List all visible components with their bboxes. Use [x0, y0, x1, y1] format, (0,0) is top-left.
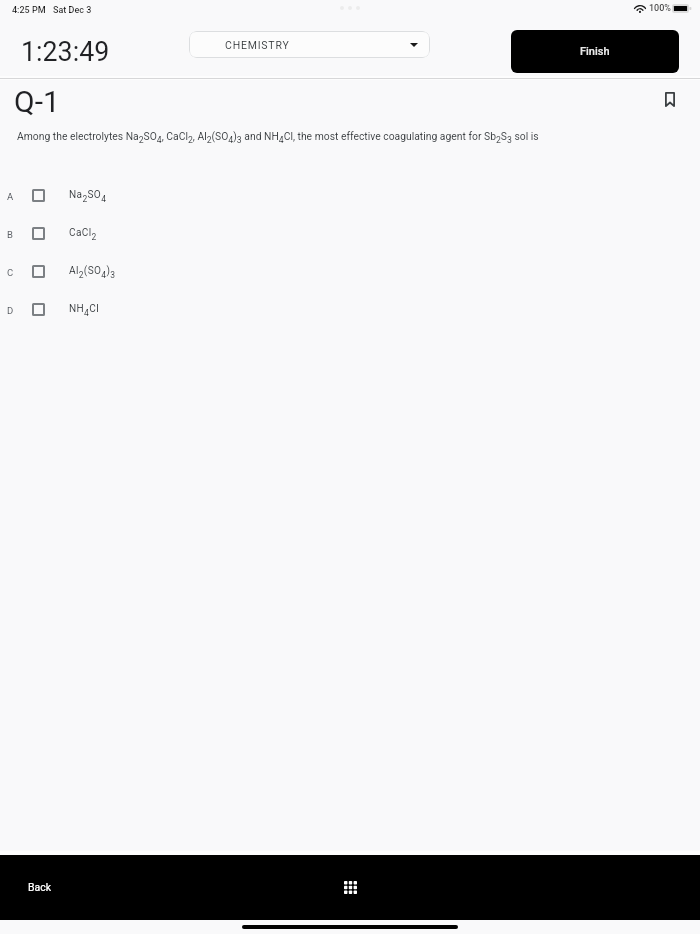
button[interactable]: All questions [334, 871, 366, 903]
staticText: Q-1 [14, 84, 60, 119]
staticText: 4:25 PM [12, 5, 46, 16]
staticText: Na2SO4 [69, 189, 107, 204]
staticText: Sat Dec 3 [53, 5, 92, 16]
staticText: B [7, 229, 13, 240]
button[interactable]: A [0, 177, 700, 215]
button[interactable]: Finish [511, 30, 679, 73]
button[interactable]: B [0, 215, 700, 253]
button[interactable]: CHEMISTRY [189, 31, 430, 58]
staticText: C [7, 267, 14, 278]
staticText: Al2(SO4)3 [69, 265, 116, 280]
staticText: CaCl2 [69, 227, 97, 242]
staticText: CHEMISTRY [225, 39, 290, 51]
staticText: NH4Cl [69, 303, 99, 318]
staticText: Among the electrolytes Na2SO4, CaCl2, Al… [17, 130, 539, 145]
staticText: Back [28, 881, 52, 893]
button[interactable]: Back [28, 881, 52, 893]
button[interactable]: Bookmark [655, 88, 685, 118]
staticText: 1:23:49 [21, 36, 110, 67]
staticText: Finish [580, 45, 610, 58]
staticText: 100% [649, 3, 671, 14]
staticText: A [7, 191, 14, 202]
button[interactable]: D [0, 291, 700, 329]
button[interactable]: C [0, 253, 700, 291]
staticText: D [7, 305, 14, 316]
